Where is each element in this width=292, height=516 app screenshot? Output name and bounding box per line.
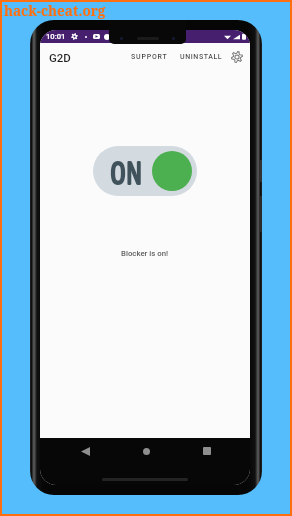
staticText: ON <box>110 154 142 192</box>
staticText: Blocker is on! <box>121 249 169 258</box>
button[interactable]: UNINSTALL <box>180 48 226 66</box>
button[interactable]: Recents <box>199 443 215 459</box>
button[interactable]: Back <box>77 443 93 459</box>
staticText: UNINSTALL <box>180 53 223 61</box>
button[interactable]: Blocker is on <box>93 146 197 196</box>
staticText: 10:01 <box>46 32 66 41</box>
staticText: hack-cheat.org <box>4 2 106 20</box>
staticText: G2D <box>49 51 71 64</box>
button[interactable]: Home <box>138 443 154 459</box>
staticText: SUPPORT <box>131 53 168 61</box>
button[interactable]: SUPPORT <box>131 48 171 66</box>
button[interactable]: Settings <box>227 47 247 67</box>
